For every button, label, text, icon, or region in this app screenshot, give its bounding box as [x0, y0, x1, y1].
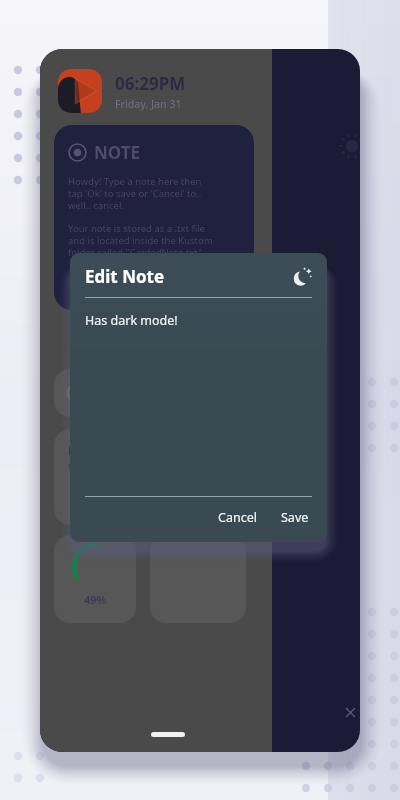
button[interactable]: NOTE	[54, 125, 254, 310]
staticText: 06:29PM	[115, 72, 186, 95]
staticText: Friday, Jan 31	[115, 97, 182, 111]
staticText: Edit Note	[85, 265, 165, 288]
staticText: C	[68, 458, 76, 474]
button[interactable]: 06:29PM	[58, 69, 186, 113]
staticText: Save	[281, 509, 309, 526]
staticText: NOTE	[94, 141, 141, 164]
button[interactable]: B	[54, 429, 272, 525]
staticText: Has dark mode!	[85, 312, 178, 329]
button[interactable]	[54, 369, 272, 417]
button[interactable]	[150, 535, 246, 623]
staticText: B	[68, 442, 76, 458]
button[interactable]: Close	[340, 702, 360, 722]
staticText: Howdy! Type a note here then tap 'Ok' to…	[68, 175, 202, 212]
button[interactable]: 49%	[54, 535, 136, 623]
staticText: Your note is stored as a .txt file and i…	[68, 222, 213, 259]
staticText: 49%	[84, 592, 107, 607]
button[interactable]: Cancel	[211, 506, 264, 529]
button[interactable]: Toggle dark mode	[291, 266, 313, 288]
button[interactable]: Save	[274, 506, 316, 529]
staticText: Cancel	[218, 509, 257, 526]
